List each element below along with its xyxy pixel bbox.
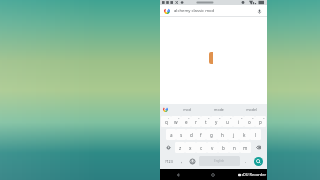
button[interactable]: i <box>233 116 244 127</box>
staticText: alchemy classic mod <box>174 8 255 14</box>
button[interactable]: Emoji <box>188 155 197 167</box>
staticText: i <box>238 119 240 125</box>
staticText: x <box>189 145 192 151</box>
button[interactable]: t <box>201 116 211 127</box>
staticText: a <box>170 132 173 138</box>
button[interactable]: y <box>211 116 222 127</box>
staticText: 0 <box>263 116 265 119</box>
button[interactable]: Period <box>242 155 249 167</box>
button[interactable]: mod <box>171 104 203 115</box>
button[interactable]: b <box>218 142 229 153</box>
staticText: r <box>195 119 197 125</box>
staticText: 5 <box>208 116 210 119</box>
button[interactable]: w <box>171 116 181 127</box>
staticText: , <box>181 158 183 164</box>
staticText: model <box>246 107 257 112</box>
button[interactable]: v <box>207 142 218 153</box>
staticText: . <box>245 158 247 164</box>
staticText: 9 <box>252 116 254 119</box>
staticText: z <box>179 145 182 151</box>
button[interactable]: e <box>181 116 191 127</box>
button[interactable]: ?123 <box>162 155 176 167</box>
staticText: ?123 <box>165 159 173 164</box>
staticText: w <box>174 119 178 125</box>
button[interactable]: k <box>239 129 250 140</box>
staticText: 6 <box>219 116 221 119</box>
button[interactable]: a <box>166 129 176 140</box>
staticText: n <box>233 145 236 151</box>
button[interactable]: c <box>196 142 207 153</box>
staticText: DU Recorder <box>243 172 266 177</box>
staticText: e <box>185 119 188 125</box>
button[interactable]: alchemy classic mod <box>160 5 267 16</box>
staticText: English <box>214 159 225 163</box>
button[interactable]: z <box>175 142 185 153</box>
staticText: j <box>233 132 235 138</box>
staticText: g <box>210 132 213 138</box>
button[interactable]: Home <box>195 169 231 180</box>
staticText: o <box>248 119 251 125</box>
button[interactable]: x <box>185 142 196 153</box>
staticText: p <box>259 119 262 125</box>
button[interactable]: Recents <box>231 169 267 180</box>
button[interactable]: m <box>240 142 251 153</box>
button[interactable]: Comma <box>178 155 186 167</box>
staticText: mod <box>183 107 191 112</box>
button[interactable]: j <box>228 129 239 140</box>
staticText: d <box>190 132 193 138</box>
staticText: 3 <box>188 116 190 119</box>
staticText: v <box>211 145 214 151</box>
button[interactable]: l <box>250 129 261 140</box>
button[interactable]: h <box>217 129 228 140</box>
button[interactable]: Search <box>250 154 266 168</box>
staticText: q <box>165 119 168 125</box>
staticText: l <box>255 132 257 138</box>
button[interactable]: Shift <box>161 142 175 153</box>
button[interactable]: n <box>229 142 240 153</box>
button[interactable]: Space <box>199 156 240 166</box>
staticText: f <box>200 132 202 138</box>
button[interactable]: model <box>235 104 267 115</box>
button[interactable]: u <box>222 116 233 127</box>
button[interactable]: g <box>206 129 217 140</box>
staticText: m <box>243 145 248 151</box>
staticText: 8 <box>241 116 243 119</box>
staticText: 4 <box>198 116 200 119</box>
button[interactable]: q <box>161 116 171 127</box>
staticText: h <box>221 132 224 138</box>
staticText: 1 <box>168 116 170 119</box>
staticText: mode <box>214 107 224 112</box>
button[interactable]: f <box>196 129 206 140</box>
button[interactable]: r <box>191 116 201 127</box>
staticText: c <box>200 145 203 151</box>
staticText: b <box>222 145 225 151</box>
button[interactable]: mode <box>203 104 235 115</box>
button[interactable]: Backspace <box>251 142 266 153</box>
staticText: 7 <box>230 116 232 119</box>
staticText: t <box>205 119 207 125</box>
staticText: s <box>180 132 183 138</box>
button[interactable]: s <box>176 129 186 140</box>
button[interactable]: d <box>186 129 196 140</box>
staticText: 2 <box>178 116 180 119</box>
staticText: y <box>215 119 218 125</box>
button[interactable]: Google assistant <box>160 104 171 115</box>
staticText: k <box>243 132 246 138</box>
button[interactable]: Voice search <box>255 7 263 15</box>
staticText: u <box>226 119 229 125</box>
button[interactable]: Back <box>160 169 195 180</box>
button[interactable]: p <box>255 116 266 127</box>
button[interactable]: o <box>244 116 255 127</box>
